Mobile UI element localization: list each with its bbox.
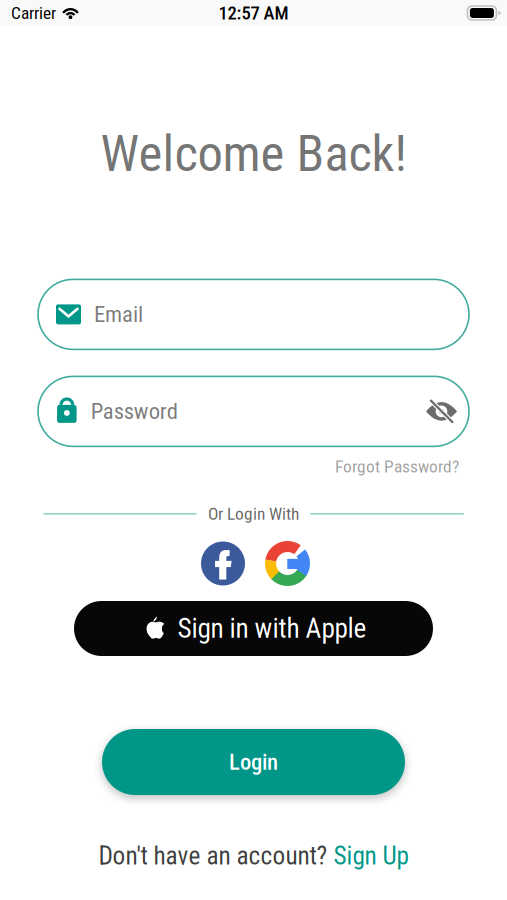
staticText: Don't have an account?	[98, 841, 333, 871]
button[interactable]: Sign in with Facebook	[201, 541, 245, 585]
staticText: Carrier	[11, 3, 56, 23]
staticText: Login	[229, 749, 278, 775]
staticText: 12:57 AM	[218, 2, 288, 24]
staticText: Sign in with Apple	[177, 612, 366, 644]
staticText: Welcome Back!	[100, 124, 406, 183]
button[interactable]: Sign in with Google	[265, 541, 310, 586]
staticText: Email	[94, 301, 143, 328]
button[interactable]: Forgot Password?	[335, 456, 459, 477]
button[interactable]: Sign Up	[333, 841, 408, 871]
button[interactable]: Sign in with Apple	[74, 601, 433, 656]
staticText: Or Login With	[208, 504, 299, 524]
button[interactable]: Password	[38, 376, 469, 446]
staticText: Password	[91, 398, 178, 425]
button[interactable]: Login	[102, 729, 405, 795]
staticText: Sign Up	[333, 841, 408, 871]
staticText: Forgot Password?	[335, 456, 459, 477]
